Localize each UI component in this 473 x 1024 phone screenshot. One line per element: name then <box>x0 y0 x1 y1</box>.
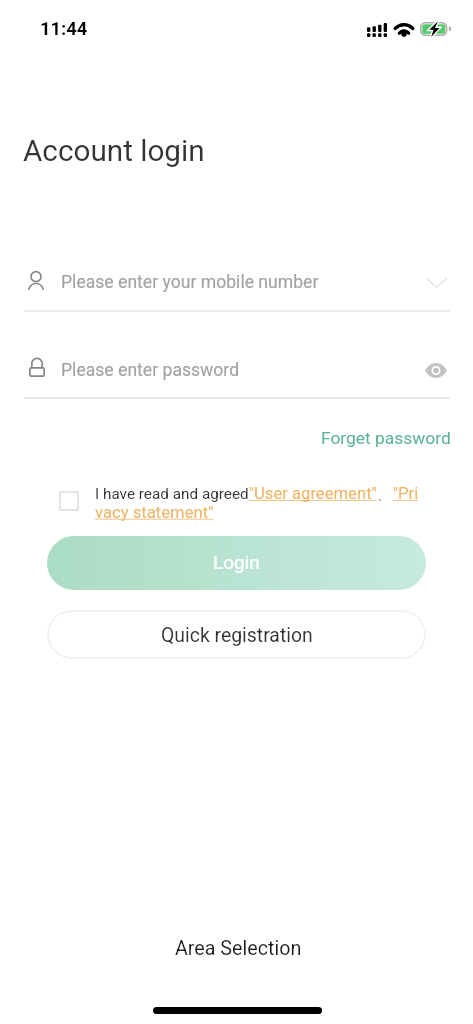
button[interactable]: Login <box>47 536 426 590</box>
button[interactable]: Quick registration <box>47 610 426 659</box>
button[interactable]: Agree to user agreement <box>59 491 79 511</box>
button[interactable]: Show password <box>414 352 450 388</box>
staticText: 11:44 <box>40 18 88 40</box>
staticText: Quick registration <box>161 624 313 647</box>
button[interactable]: Forget password <box>312 422 460 454</box>
staticText: Login <box>213 551 260 573</box>
staticText: Please enter your mobile number <box>61 272 319 293</box>
staticText: Account login <box>23 133 205 168</box>
button[interactable]: Please enter your mobile number <box>24 264 450 300</box>
button[interactable]: Area Selection <box>161 931 316 966</box>
staticText: Forget password <box>321 428 451 448</box>
button[interactable]: Please enter password <box>24 352 450 388</box>
button[interactable]: Select account <box>414 264 450 300</box>
staticText: I have read and agreed"User agreement"、 … <box>95 484 435 522</box>
staticText: Please enter password <box>61 360 240 381</box>
staticText: Area Selection <box>175 937 302 960</box>
